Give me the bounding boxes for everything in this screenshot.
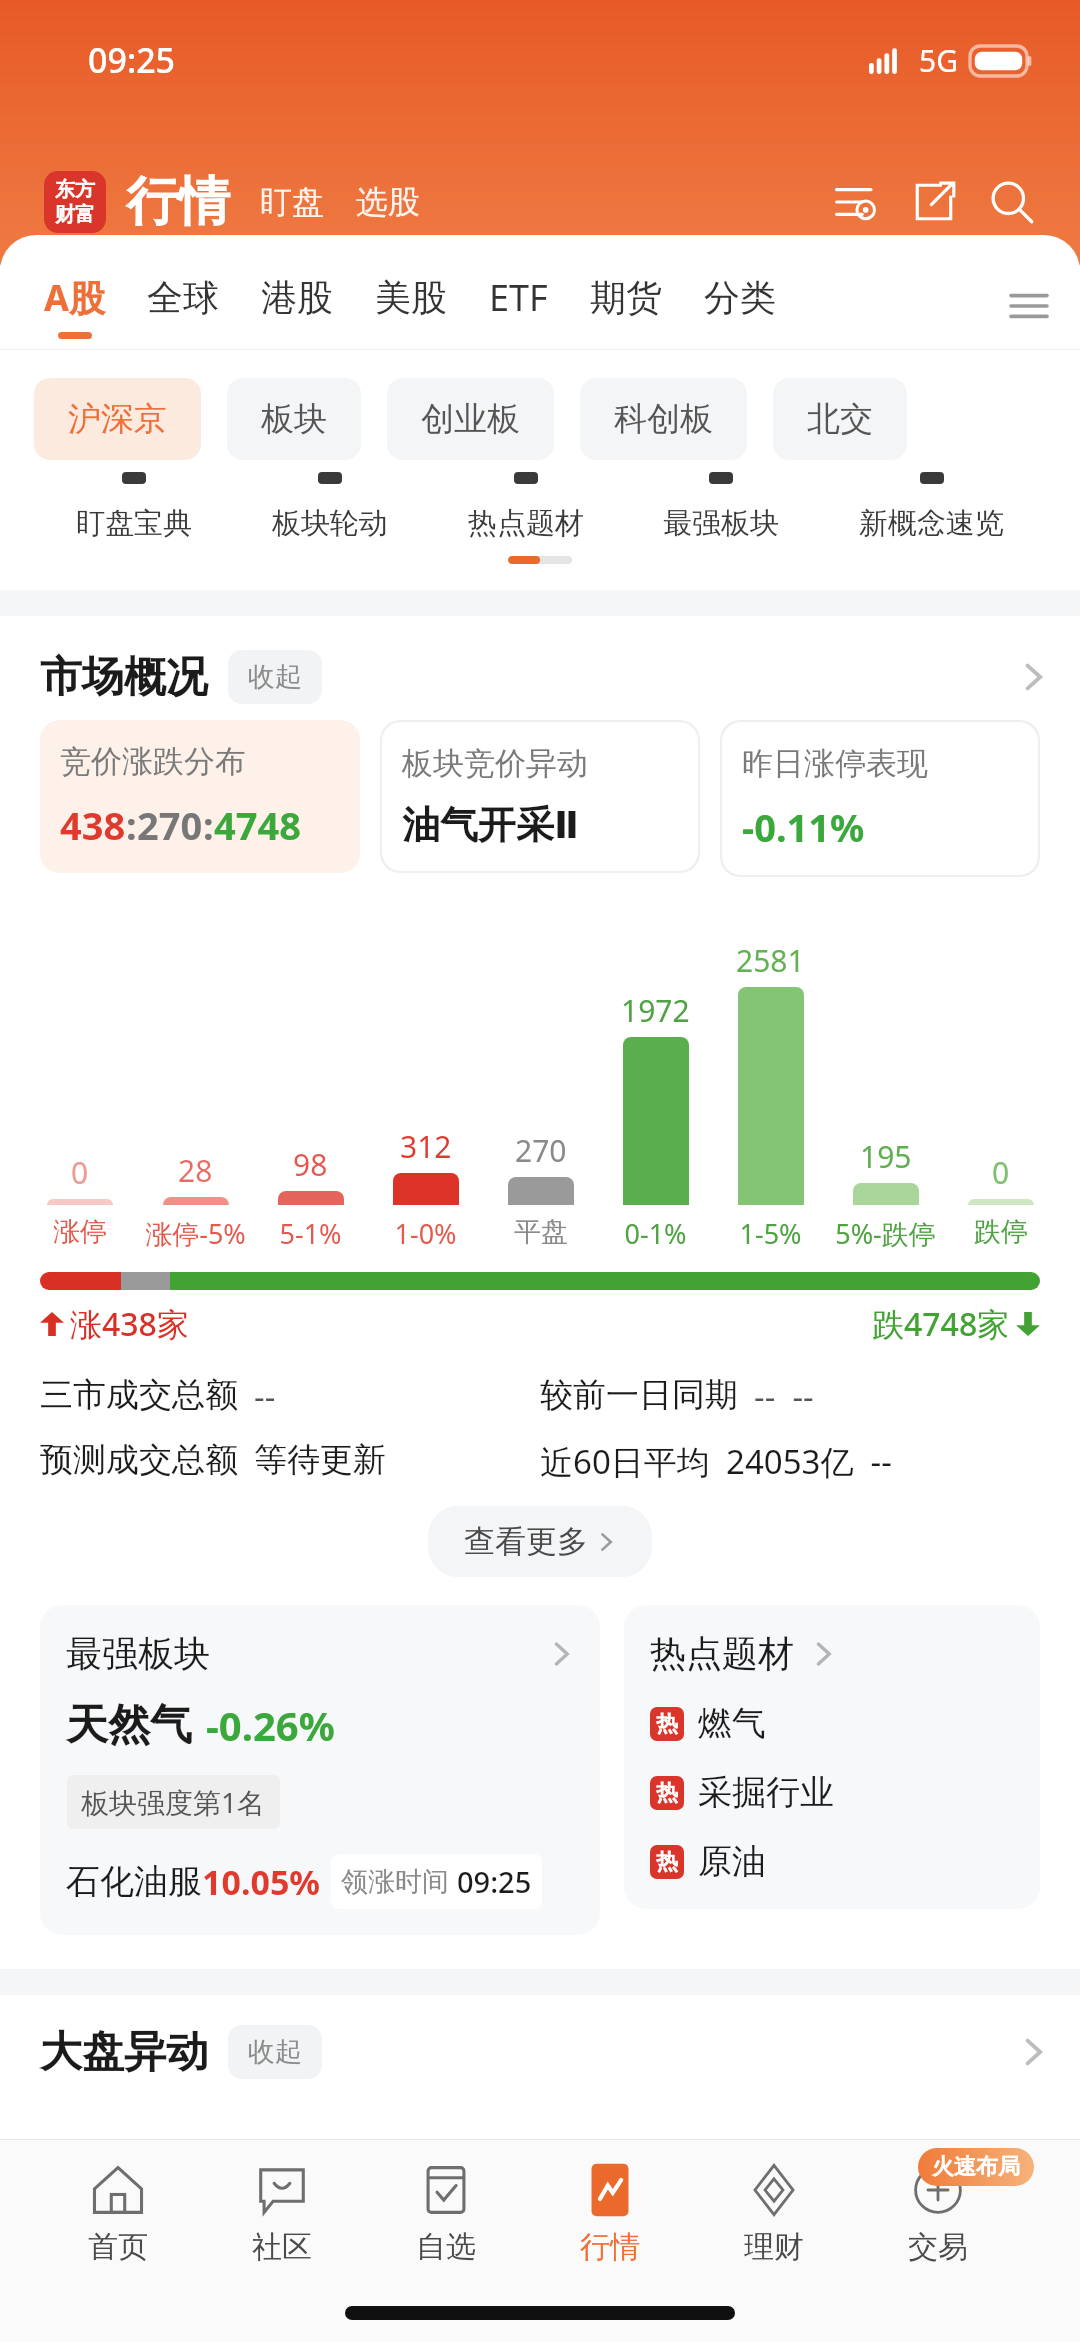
staticText: 热点题材 <box>468 505 584 542</box>
staticText: 创业板 <box>421 398 520 440</box>
staticText: 昨日涨停表现 <box>742 744 928 783</box>
button[interactable]: 期货 <box>580 267 672 345</box>
button[interactable]: 盯盘 <box>256 176 328 228</box>
staticText: 09:25 <box>457 1862 532 1901</box>
staticText: 98 <box>293 1144 328 1185</box>
button[interactable]: Search <box>982 172 1042 232</box>
button[interactable]: 查看更多 <box>428 1506 652 1577</box>
button[interactable]: 板块 <box>227 378 361 460</box>
button[interactable]: 首页 <box>72 2158 164 2270</box>
staticText: 交易 <box>908 2228 968 2266</box>
button[interactable]: 科创板 <box>580 378 747 460</box>
button[interactable]: 社区 <box>236 2158 328 2270</box>
button[interactable]: 选股 <box>352 176 424 228</box>
button[interactable]: 热点题材 <box>624 1605 1040 1909</box>
staticText: 查看更多 <box>464 1522 588 1561</box>
staticText: 涨停-5% <box>145 1215 246 1252</box>
staticText: 原油 <box>698 1840 766 1883</box>
staticText: 板块 <box>261 398 327 440</box>
button[interactable]: 北交 <box>773 378 907 460</box>
button[interactable]: List settings <box>826 172 886 232</box>
button[interactable]: 港股 <box>251 267 343 345</box>
button[interactable]: 理财 <box>728 2158 820 2270</box>
staticText: 首页 <box>88 2228 148 2266</box>
button[interactable]: 交易 <box>892 2158 984 2270</box>
button[interactable]: 最强板块 <box>659 472 783 542</box>
staticText: -- <box>254 1374 276 1419</box>
staticText: : <box>126 799 137 851</box>
button[interactable]: 热点题材 <box>464 472 588 542</box>
staticText: 28 <box>178 1150 213 1191</box>
button[interactable]: 全球 <box>137 267 229 345</box>
staticText: 预测成交总额 <box>40 1439 238 1481</box>
button[interactable]: 盯盘宝典 <box>72 472 196 542</box>
button[interactable]: 创业板 <box>387 378 554 460</box>
staticText: 热 <box>656 1779 678 1807</box>
staticText: 盯盘宝典 <box>76 505 192 542</box>
button[interactable]: All categories <box>1002 279 1056 333</box>
button[interactable]: ETF <box>479 265 558 347</box>
staticText: 板块竞价异动 <box>402 744 588 783</box>
button[interactable]: 大盘异动 <box>0 1995 1080 2079</box>
staticText: 板块轮动 <box>272 505 388 542</box>
staticText: 近60日平均 <box>540 1439 710 1484</box>
staticText: 收起 <box>248 2035 302 2069</box>
button[interactable]: 行情 <box>564 2158 656 2270</box>
staticText: 热 <box>656 1848 678 1876</box>
staticText: 北交 <box>807 398 873 440</box>
staticText: 0 <box>992 1152 1010 1193</box>
staticText: -0.26% <box>206 1698 335 1752</box>
staticText: 行情 <box>580 2228 640 2266</box>
staticText: 市场概况 <box>40 651 208 704</box>
staticText: 1972 <box>621 990 690 1031</box>
staticText: 1-0% <box>394 1215 457 1252</box>
staticText: : <box>203 799 214 851</box>
staticText: 油气开采Ⅱ <box>402 801 580 849</box>
staticText: 较前一日同期 <box>540 1374 738 1416</box>
button[interactable]: 板块轮动 <box>268 472 392 542</box>
staticText: 竞价涨跌分布 <box>60 742 246 781</box>
staticText: 跌停 <box>974 1215 1028 1249</box>
staticText: 新概念速览 <box>859 505 1004 542</box>
button[interactable]: 板块竞价异动 <box>382 722 698 871</box>
staticText: 理财 <box>744 2228 804 2266</box>
button[interactable]: 最强板块 <box>40 1605 600 1935</box>
button[interactable]: 沪深京 <box>34 378 201 460</box>
staticText: 270 <box>137 799 203 851</box>
button[interactable]: 分类 <box>694 267 786 345</box>
staticText: 盯盘 <box>260 182 324 222</box>
staticText: 财富 <box>55 202 95 227</box>
button[interactable]: 自选 <box>400 2158 492 2270</box>
staticText: 分类 <box>704 275 776 320</box>
staticText: 0 <box>71 1152 89 1193</box>
staticText: 全球 <box>147 275 219 320</box>
button[interactable]: A股 <box>34 265 115 347</box>
button[interactable]: 竞价涨跌分布 <box>40 720 360 873</box>
staticText: 领涨时间 <box>341 1865 449 1899</box>
staticText: -- -- <box>754 1374 814 1419</box>
staticText: 5G <box>919 40 958 81</box>
staticText: 港股 <box>261 275 333 320</box>
button[interactable]: 市场概况 <box>0 616 1080 720</box>
staticText: 石化油服 <box>66 1860 202 1903</box>
staticText: -0.11% <box>742 801 865 853</box>
staticText: 期货 <box>590 275 662 320</box>
staticText: 收起 <box>248 660 302 694</box>
button[interactable]: Share <box>904 172 964 232</box>
staticText: 燃气 <box>698 1702 766 1745</box>
staticText: 大盘异动 <box>40 2026 208 2079</box>
button[interactable]: 美股 <box>365 267 457 345</box>
staticText: 涨438家 <box>70 1302 189 1346</box>
staticText: 等待更新 <box>254 1439 386 1481</box>
staticText: A股 <box>44 273 105 322</box>
staticText: 10.05% <box>202 1859 321 1905</box>
button[interactable]: 昨日涨停表现 <box>722 722 1038 875</box>
staticText: 沪深京 <box>68 398 167 440</box>
staticText: 0-1% <box>624 1215 687 1252</box>
staticText: 1-5% <box>739 1215 802 1252</box>
staticText: 平盘 <box>514 1215 568 1249</box>
staticText: 美股 <box>375 275 447 320</box>
staticText: 438 <box>60 799 126 851</box>
staticText: 312 <box>400 1126 452 1167</box>
button[interactable]: 新概念速览 <box>855 472 1008 542</box>
